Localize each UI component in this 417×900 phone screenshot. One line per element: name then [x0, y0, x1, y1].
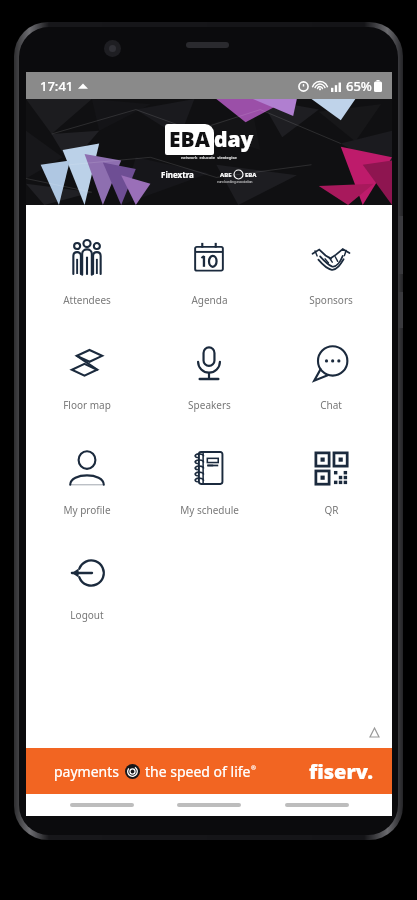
button[interactable]: Recents — [285, 803, 349, 807]
staticText: Chat — [320, 398, 342, 412]
button[interactable]: Logout — [26, 536, 148, 641]
button[interactable]: Sponsors — [270, 221, 392, 326]
staticText: Floor map — [63, 398, 111, 412]
staticText: Attendees — [63, 293, 111, 307]
button[interactable]: Chat — [270, 326, 392, 431]
button[interactable]: My schedule — [148, 431, 270, 536]
staticText: Finextra — [161, 169, 194, 180]
staticText: payments — [54, 762, 120, 781]
staticText: ABE — [220, 171, 232, 179]
button[interactable]: Back — [70, 803, 134, 807]
button[interactable]: payments — [26, 748, 392, 794]
staticText: network educate strategise — [181, 155, 237, 160]
staticText: Sponsors — [309, 293, 353, 307]
staticText: ® — [251, 764, 256, 772]
staticText: fiserv. — [309, 758, 374, 785]
button[interactable]: Home — [177, 803, 241, 807]
staticText: the speed of life — [145, 762, 251, 781]
staticText: Agenda — [191, 293, 228, 307]
staticText: My profile — [63, 503, 111, 517]
staticText: Speakers — [188, 398, 231, 412]
staticText: QR — [324, 503, 339, 517]
button[interactable]: Floor map — [26, 326, 148, 431]
button[interactable]: My profile — [26, 431, 148, 536]
staticText: EBA — [169, 125, 210, 154]
staticText: EBA — [245, 171, 257, 179]
staticText: 65% — [346, 77, 372, 95]
staticText: 17:41 — [40, 77, 74, 95]
staticText: Logout — [70, 608, 104, 622]
staticText: euro banking association — [217, 180, 253, 184]
button[interactable]: QR — [270, 431, 392, 536]
button[interactable]: Agenda — [148, 221, 270, 326]
staticText: My schedule — [180, 503, 239, 517]
button[interactable]: Attendees — [26, 221, 148, 326]
staticText: day — [214, 125, 254, 154]
button[interactable]: Speakers — [148, 326, 270, 431]
